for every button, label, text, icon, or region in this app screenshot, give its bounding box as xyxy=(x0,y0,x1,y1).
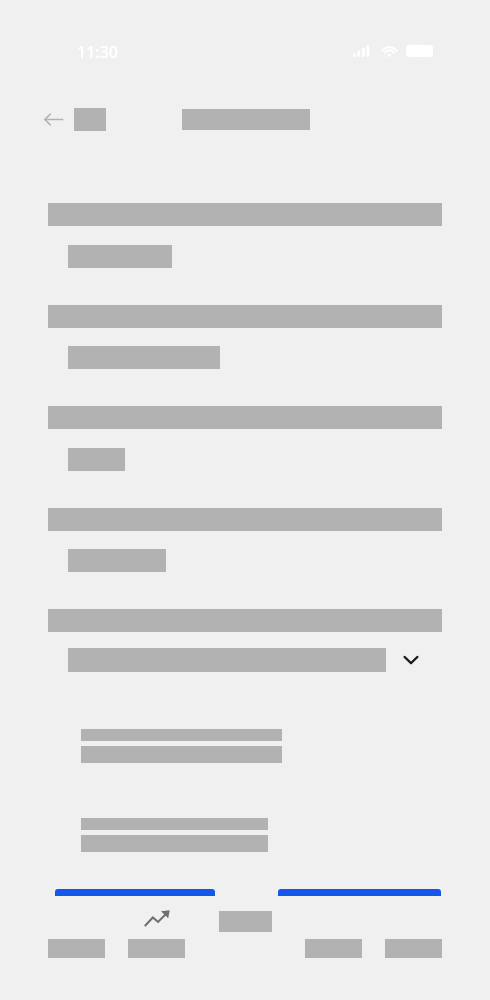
button[interactable]: Expand xyxy=(68,647,424,673)
button[interactable]: Primary action xyxy=(55,889,215,896)
button[interactable]: Secondary action xyxy=(278,889,441,896)
staticText: 11:30 xyxy=(77,41,118,63)
button[interactable]: Trending xyxy=(143,907,172,932)
button[interactable]: Back xyxy=(40,106,67,133)
other: Expand xyxy=(398,648,424,672)
